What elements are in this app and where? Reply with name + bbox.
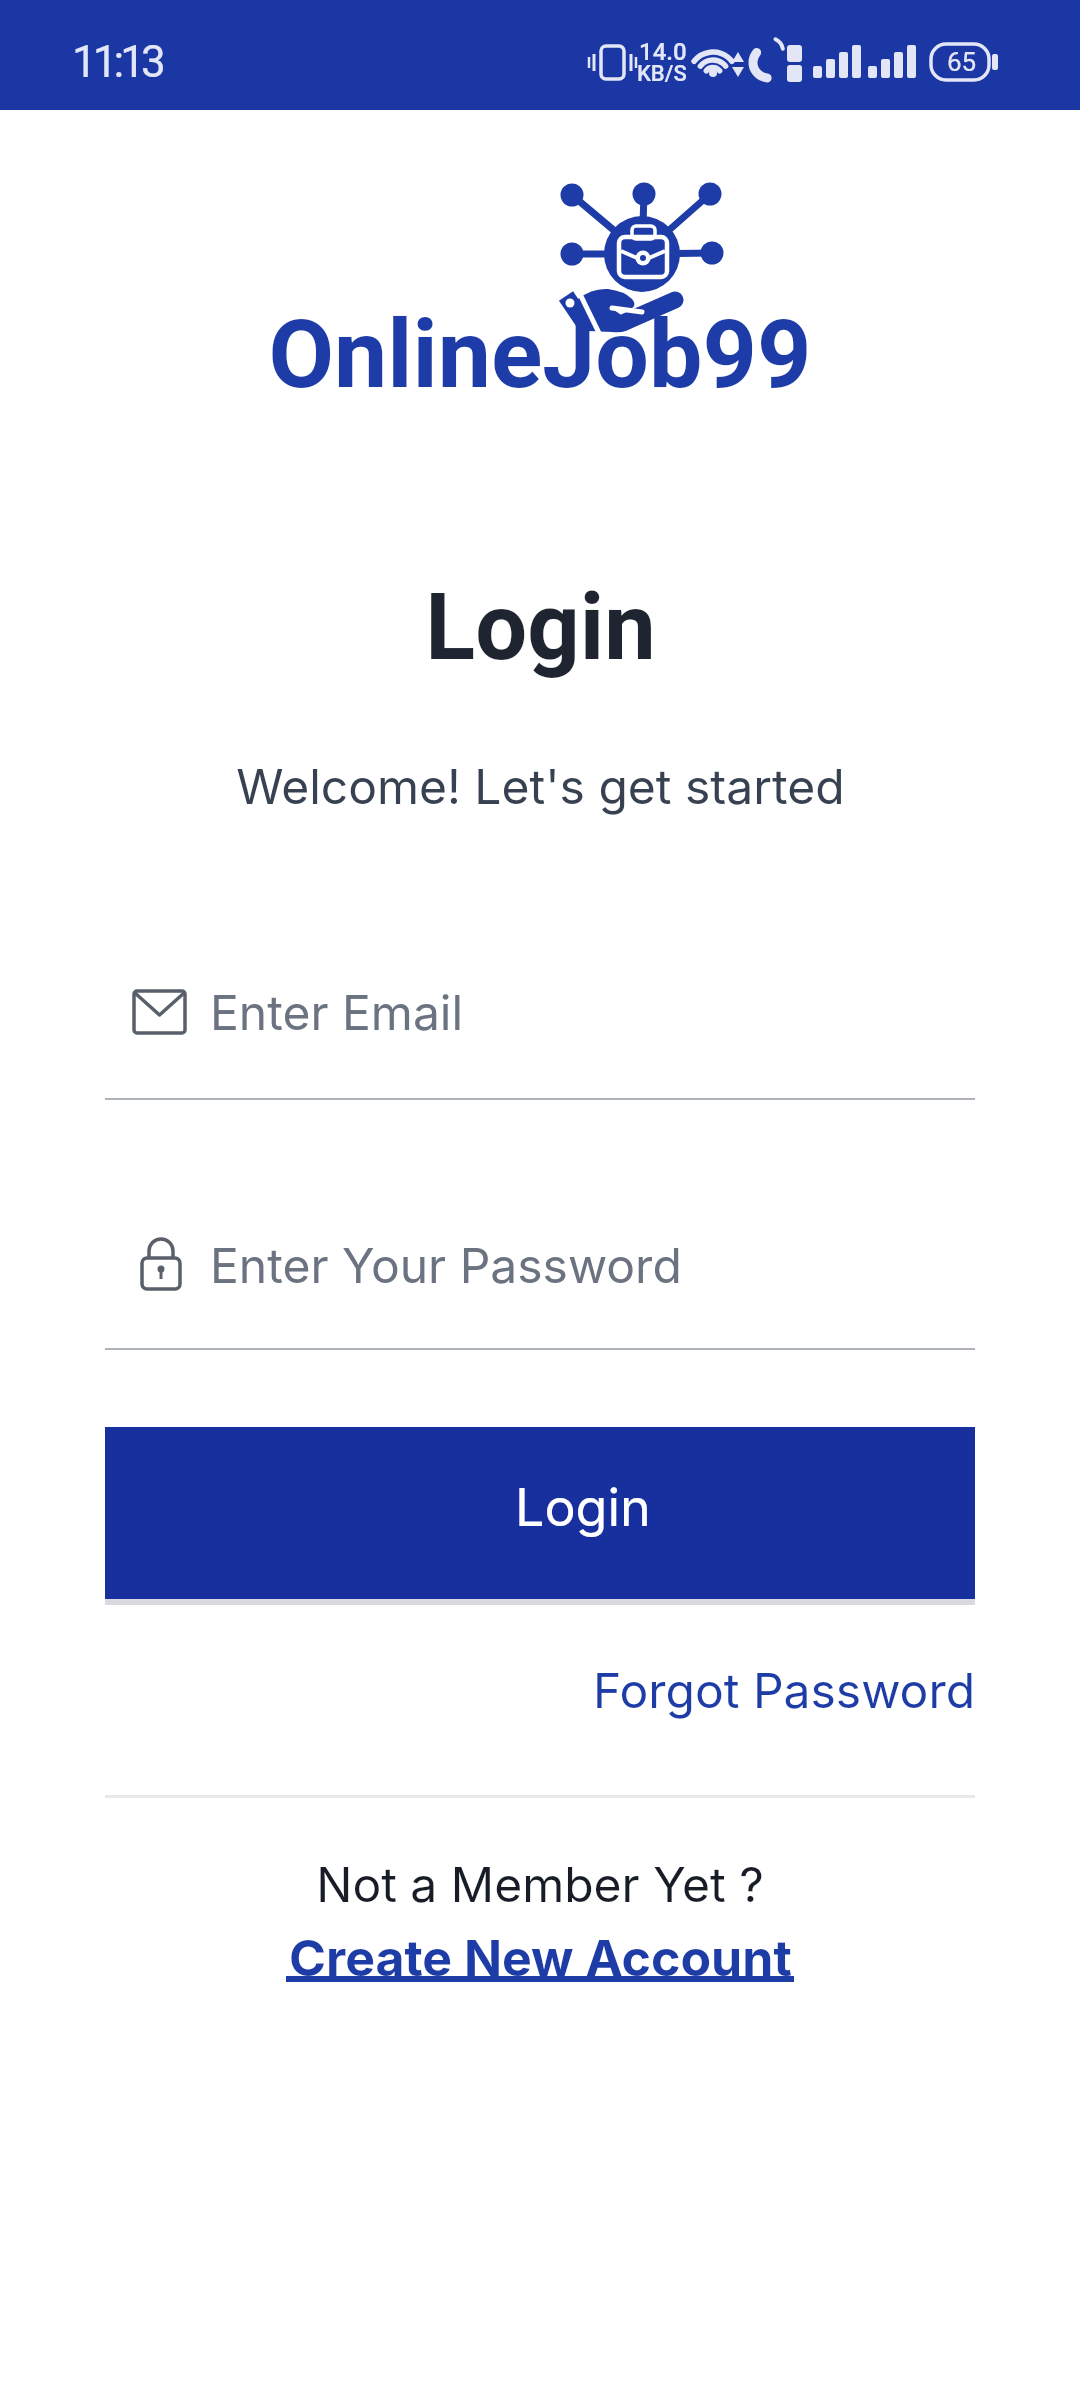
staticText: 14.0 [639,38,687,66]
staticText: Login [425,574,656,682]
button[interactable]: Forgot Password [570,1650,990,1730]
staticText: Create New Account [289,1928,792,1988]
staticText: Enter Your Password [210,1236,682,1294]
staticText: Login [515,1476,651,1539]
staticText: Enter Email [210,983,464,1041]
button[interactable]: Login [105,1427,975,1599]
staticText: Forgot Password [593,1661,976,1719]
staticText: KB/S [637,61,687,87]
button[interactable]: Create New Account [289,1928,792,1988]
staticText: 65 [947,47,977,77]
staticText: Not a Member Yet ? [316,1855,764,1913]
button[interactable]: Enter Your Password [105,1205,975,1350]
staticText: 11:13 [72,36,162,88]
staticText: OnlineJob99 [268,299,812,410]
button[interactable]: Enter Email [105,955,975,1100]
staticText: Welcome! Let's get started [236,757,845,815]
